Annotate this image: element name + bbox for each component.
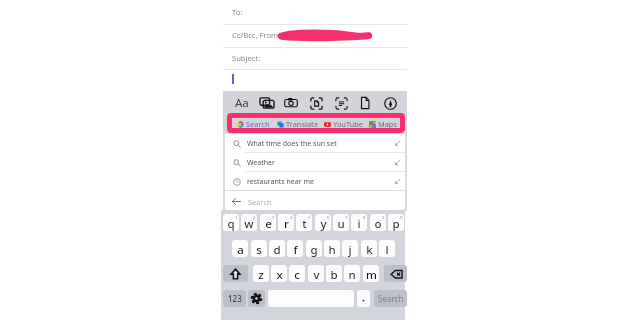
button[interactable]: Period	[357, 290, 370, 307]
staticText: t	[302, 216, 307, 231]
button[interactable]: Attach file	[357, 95, 373, 111]
button[interactable]: w	[241, 214, 257, 231]
button[interactable]: Search	[237, 115, 270, 133]
staticText: e	[265, 216, 272, 231]
staticText: i	[357, 216, 361, 231]
staticText: w	[244, 216, 254, 231]
staticText: m	[366, 267, 377, 282]
staticText: q	[227, 216, 235, 231]
staticText: Maps	[378, 119, 397, 129]
staticText: To:	[232, 7, 243, 17]
button[interactable]: 123	[223, 290, 246, 307]
staticText: Cc/Bcc, From:	[232, 30, 281, 40]
button[interactable]: y	[315, 214, 331, 231]
staticText: s	[256, 242, 262, 257]
staticText: Weather	[247, 158, 275, 168]
button[interactable]: c	[289, 265, 305, 282]
button[interactable]: p	[388, 214, 404, 231]
button[interactable]: Search	[231, 191, 397, 212]
staticText: 123	[228, 293, 242, 304]
staticText: 0	[400, 215, 403, 221]
staticText: h	[328, 242, 336, 257]
staticText: Search	[248, 197, 272, 207]
staticText: a	[237, 242, 244, 257]
staticText: Search	[378, 293, 404, 304]
staticText: d	[273, 242, 281, 257]
staticText: f	[293, 242, 298, 257]
button[interactable]: h	[324, 240, 340, 257]
button[interactable]: Text formatting	[234, 95, 250, 111]
button[interactable]: e	[260, 214, 276, 231]
button[interactable]: g	[306, 240, 322, 257]
staticText: 1	[235, 215, 238, 221]
staticText: v	[313, 267, 320, 282]
button[interactable]: restaurants near me	[225, 172, 405, 191]
button[interactable]: Translate	[277, 115, 319, 133]
staticText: YouTube	[333, 119, 363, 129]
staticText: 2	[253, 215, 256, 221]
staticText: 4	[290, 215, 293, 221]
staticText: z	[258, 267, 264, 282]
staticText: Aa	[235, 95, 249, 111]
staticText: 5	[308, 215, 311, 221]
button[interactable]: Markup	[382, 95, 398, 111]
staticText: n	[348, 267, 356, 282]
button[interactable]: Cc/Bcc, From:	[232, 30, 281, 40]
button[interactable]: x	[271, 265, 287, 282]
button[interactable]: Subject:	[232, 53, 261, 63]
staticText: r	[284, 216, 289, 231]
staticText: Translate	[286, 119, 319, 129]
button[interactable]: s	[251, 240, 267, 257]
button[interactable]: u	[333, 214, 349, 231]
button[interactable]: Scan document	[333, 95, 349, 111]
staticText: p	[392, 216, 400, 231]
button[interactable]: z	[253, 265, 269, 282]
staticText: restaurants near me	[247, 177, 314, 187]
button[interactable]: i	[351, 214, 367, 231]
staticText: o	[374, 216, 382, 231]
staticText: l	[385, 242, 389, 257]
button[interactable]: j	[342, 240, 358, 257]
button[interactable]: b	[326, 265, 342, 282]
staticText: 8	[363, 215, 366, 221]
staticText: Search	[246, 119, 270, 129]
button[interactable]: Shift	[223, 265, 248, 282]
staticText: b	[330, 267, 338, 282]
staticText: k	[366, 242, 373, 257]
staticText: x	[276, 267, 283, 282]
button[interactable]: Keyboard settings	[248, 290, 265, 307]
button[interactable]: f	[287, 240, 303, 257]
button[interactable]: d	[269, 240, 285, 257]
button[interactable]: What time does the sun set	[225, 134, 405, 153]
button[interactable]: Camera	[283, 95, 299, 111]
staticText: u	[337, 216, 345, 231]
staticText: 3	[272, 215, 275, 221]
button[interactable]: a	[232, 240, 248, 257]
staticText: What time does the sun set	[247, 139, 337, 149]
staticText: 6	[327, 215, 330, 221]
staticText: Subject:	[232, 53, 261, 63]
staticText: c	[294, 267, 300, 282]
button[interactable]: Maps	[369, 115, 397, 133]
button[interactable]: r	[278, 214, 294, 231]
button[interactable]: q	[223, 214, 239, 231]
button[interactable]: Photos	[259, 95, 275, 111]
staticText: 9	[382, 215, 385, 221]
button[interactable]: o	[370, 214, 386, 231]
staticText: y	[320, 216, 327, 231]
button[interactable]: Weather	[225, 153, 405, 172]
staticText: j	[348, 242, 352, 257]
button[interactable]: l	[379, 240, 395, 257]
button[interactable]: t	[296, 214, 312, 231]
button[interactable]: k	[361, 240, 377, 257]
button[interactable]: YouTube	[324, 115, 363, 133]
button[interactable]: n	[344, 265, 360, 282]
button[interactable]: Scan text	[308, 95, 324, 111]
button[interactable]: m	[363, 265, 379, 282]
staticText: g	[310, 242, 318, 257]
button[interactable]: To:	[232, 7, 243, 17]
button[interactable]: v	[308, 265, 324, 282]
button[interactable]: Search	[374, 290, 407, 307]
button[interactable]: Backspace	[384, 265, 407, 282]
